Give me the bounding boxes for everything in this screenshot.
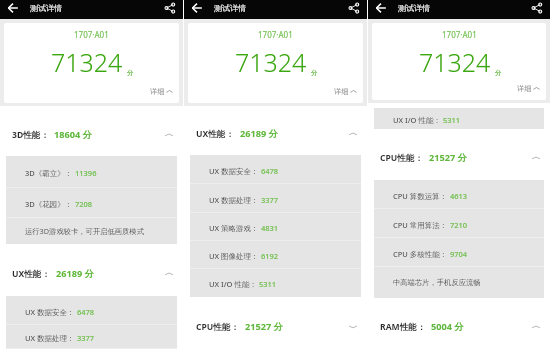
staticText: 6478 — [261, 166, 279, 176]
staticText: CPU 多核性能： — [393, 249, 448, 259]
staticText: 详细 — [150, 87, 165, 96]
button[interactable]: 3D《花园》： — [6, 188, 177, 218]
staticText: 5004 分 — [431, 320, 464, 333]
staticText: 71324 — [235, 45, 307, 79]
button[interactable]: Back — [190, 1, 204, 15]
staticText: UX 图像处理： — [209, 251, 259, 261]
button[interactable]: UX性能： — [184, 106, 367, 155]
button[interactable]: UX性能： — [0, 244, 183, 296]
button[interactable]: Back — [374, 1, 388, 15]
staticText: UX 数据处理： — [209, 195, 259, 205]
staticText: 1707·A01 — [74, 29, 109, 40]
button[interactable]: UX I/O 性能： — [190, 269, 361, 297]
button[interactable]: Share — [163, 1, 177, 15]
staticText: UX性能： — [12, 268, 51, 280]
staticText: CPU性能： — [380, 152, 424, 164]
button[interactable]: 3D性能： — [0, 106, 183, 156]
button[interactable]: Back — [6, 1, 20, 15]
staticText: UX 数据安全： — [25, 307, 75, 317]
button[interactable]: 中高端芯片，手机反应流畅 — [374, 267, 544, 298]
button[interactable]: UX 图像处理： — [190, 241, 361, 269]
staticText: 1707·A01 — [442, 29, 477, 40]
staticText: 详细 — [517, 84, 532, 93]
staticText: 21527 分 — [245, 320, 283, 333]
button[interactable]: UX I/O 性能： — [374, 108, 544, 129]
button[interactable]: CPU性能： — [368, 129, 550, 180]
button[interactable]: Share — [347, 1, 361, 15]
staticText: 71324 — [419, 45, 491, 79]
staticText: 5311 — [443, 115, 461, 125]
staticText: CPU 算数运算： — [393, 191, 448, 201]
button[interactable]: 1707·A01 — [188, 23, 363, 103]
staticText: 测试详情 — [398, 3, 430, 13]
staticText: 6478 — [77, 307, 95, 317]
staticText: 详细 — [334, 87, 349, 96]
staticText: UX 数据处理： — [25, 333, 75, 343]
staticText: 7210 — [450, 220, 468, 230]
staticText: 3D《花园》： — [25, 199, 73, 209]
staticText: 21527 分 — [429, 151, 467, 164]
staticText: 26189 分 — [240, 127, 278, 140]
staticText: 18604 分 — [54, 128, 92, 141]
staticText: 7208 — [75, 199, 93, 209]
button[interactable]: UX 策略游戏： — [190, 213, 361, 241]
staticText: 分 — [495, 69, 502, 77]
button[interactable]: UX 数据处理： — [6, 325, 177, 349]
button[interactable]: UX 数据安全： — [6, 296, 177, 325]
staticText: UX I/O 性能： — [209, 279, 257, 289]
staticText: 1707·A01 — [258, 29, 293, 40]
staticText: 26189 分 — [56, 267, 94, 280]
staticText: CPU 常用算法： — [393, 220, 448, 230]
staticText: 分 — [127, 69, 134, 77]
staticText: 3D《霸立》： — [25, 168, 73, 178]
staticText: 3D性能： — [12, 129, 49, 141]
button[interactable]: 3D《霸立》： — [6, 156, 177, 188]
button[interactable]: Share — [530, 1, 544, 15]
button[interactable]: CPU 常用算法： — [374, 209, 544, 238]
staticText: 11396 — [75, 168, 97, 178]
staticText: 71324 — [51, 45, 123, 79]
staticText: 6192 — [261, 251, 279, 261]
staticText: CPU性能： — [196, 321, 240, 333]
staticText: 运行3D游戏较卡，可开启低画质模式 — [25, 226, 144, 236]
staticText: 4613 — [450, 191, 468, 201]
button[interactable]: 运行3D游戏较卡，可开启低画质模式 — [6, 218, 177, 244]
staticText: RAM性能： — [380, 321, 426, 333]
button[interactable]: 1707·A01 — [372, 23, 546, 100]
staticText: UX I/O 性能： — [393, 115, 441, 125]
button[interactable]: RAM性能： — [368, 298, 550, 349]
staticText: 5311 — [259, 279, 277, 289]
staticText: 3377 — [77, 333, 95, 343]
staticText: 分 — [311, 69, 318, 77]
button[interactable]: UX 数据处理： — [190, 184, 361, 213]
staticText: 9704 — [450, 249, 468, 259]
staticText: 3377 — [261, 195, 279, 205]
button[interactable]: CPU性能： — [184, 297, 367, 349]
staticText: 4831 — [261, 223, 279, 233]
staticText: UX 策略游戏： — [209, 223, 259, 233]
staticText: 中高端芯片，手机反应流畅 — [393, 278, 481, 287]
button[interactable]: UX 数据安全： — [190, 155, 361, 184]
staticText: 测试详情 — [214, 3, 246, 13]
button[interactable]: CPU 多核性能： — [374, 238, 544, 267]
staticText: 测试详情 — [30, 3, 62, 13]
staticText: UX 数据安全： — [209, 166, 259, 176]
staticText: UX性能： — [196, 128, 235, 140]
button[interactable]: CPU 算数运算： — [374, 180, 544, 209]
button[interactable]: 1707·A01 — [4, 23, 179, 103]
